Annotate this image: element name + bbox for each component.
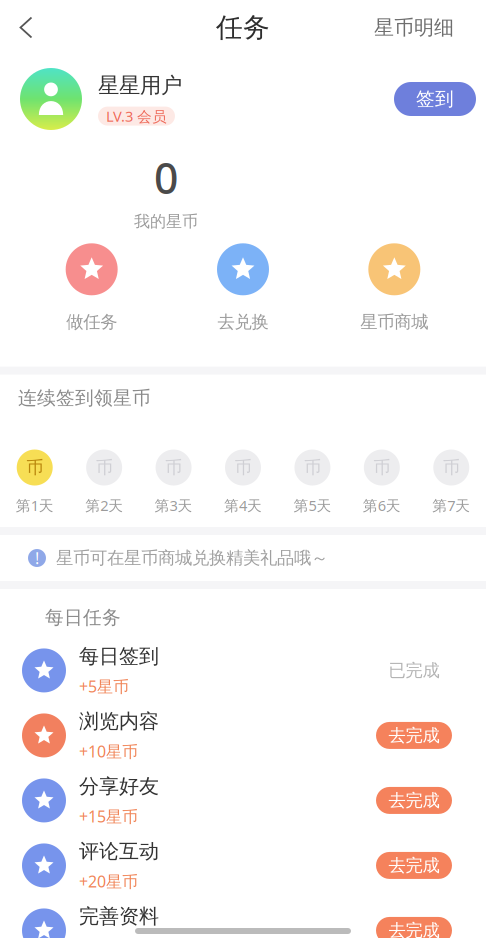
- staticText: 去完成: [388, 725, 439, 746]
- staticText: 币: [373, 457, 390, 478]
- button[interactable]: 签到: [394, 82, 486, 116]
- staticText: 第3天: [155, 495, 193, 515]
- staticText: 第2天: [85, 495, 123, 515]
- staticText: 第7天: [432, 495, 470, 515]
- staticText: 币: [26, 457, 43, 478]
- staticText: 星币商城: [360, 311, 428, 333]
- button[interactable]: 浏览内容: [0, 703, 486, 768]
- staticText: 币: [234, 457, 251, 478]
- staticText: 星币明细: [374, 15, 454, 40]
- staticText: 0: [154, 149, 178, 206]
- staticText: 做任务: [66, 311, 117, 333]
- button[interactable]: Back: [0, 0, 52, 55]
- staticText: 连续签到领星币: [18, 387, 151, 409]
- button[interactable]: 去兑换: [167, 243, 319, 333]
- button[interactable]: 做任务: [16, 243, 167, 333]
- staticText: 去完成: [388, 920, 439, 938]
- button[interactable]: 评论互动: [0, 833, 486, 898]
- staticText: +10星币: [79, 741, 138, 762]
- staticText: 币: [304, 457, 321, 478]
- staticText: 币: [96, 457, 113, 478]
- staticText: 完善资料: [79, 904, 159, 929]
- staticText: 每日签到: [79, 644, 159, 669]
- staticText: 去完成: [388, 790, 439, 811]
- button[interactable]: 星币商城: [319, 243, 470, 333]
- button[interactable]: 星币明细: [374, 0, 486, 55]
- staticText: +5星币: [79, 676, 129, 697]
- staticText: 币: [165, 457, 182, 478]
- staticText: 任务: [216, 11, 270, 44]
- button[interactable]: 分享好友: [0, 768, 486, 833]
- staticText: 币: [443, 457, 460, 478]
- staticText: 签到: [416, 87, 454, 110]
- staticText: 第1天: [16, 495, 54, 515]
- staticText: 每日任务: [45, 606, 121, 629]
- staticText: +15星币: [79, 806, 138, 827]
- staticText: !: [35, 547, 39, 569]
- staticText: 去兑换: [217, 311, 268, 333]
- staticText: 星星用户: [98, 72, 182, 99]
- staticText: 分享好友: [79, 774, 159, 799]
- staticText: 去完成: [388, 855, 439, 876]
- staticText: LV.3 会员: [106, 106, 167, 126]
- staticText: 我的星币: [134, 212, 198, 231]
- staticText: 第5天: [293, 495, 331, 515]
- staticText: 已完成: [388, 660, 439, 681]
- button[interactable]: 每日签到: [0, 638, 486, 703]
- staticText: 浏览内容: [79, 709, 159, 734]
- staticText: 第6天: [363, 495, 401, 515]
- staticText: 第4天: [224, 495, 262, 515]
- button[interactable]: 完善资料: [0, 898, 486, 938]
- staticText: 星币可在星币商城兑换精美礼品哦～: [56, 547, 328, 569]
- staticText: +20星币: [79, 871, 138, 892]
- staticText: 评论互动: [79, 839, 159, 864]
